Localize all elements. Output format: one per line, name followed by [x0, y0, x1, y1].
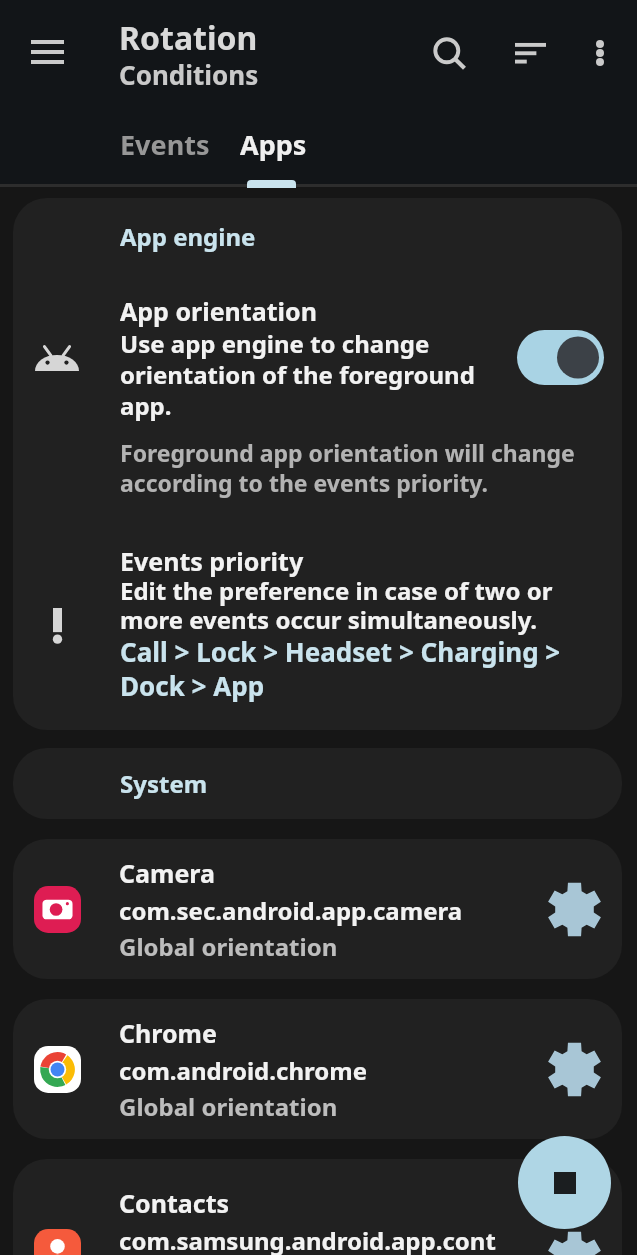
staticText: Rotation [119, 16, 258, 60]
staticText: com.android.chrome [119, 1051, 367, 1088]
button[interactable]: Contacts [13, 1159, 622, 1255]
button[interactable]: Sort [497, 20, 563, 86]
button[interactable]: Events priority [13, 548, 622, 703]
staticText: Call > Lock > Headset > Charging > Dock … [120, 635, 600, 703]
staticText: Contacts [119, 1184, 230, 1221]
button[interactable]: App settings [544, 1228, 604, 1255]
button[interactable]: System [13, 748, 622, 819]
staticText: com.sec.android.app.camera [119, 891, 463, 928]
button[interactable]: App orientation [13, 293, 622, 422]
staticText: Edit the preference in case of two or mo… [120, 577, 600, 635]
button[interactable]: Search [417, 21, 483, 87]
button[interactable]: Chrome [13, 999, 622, 1139]
button[interactable]: Navigation menu [14, 19, 80, 85]
staticText: App engine [120, 220, 256, 253]
button[interactable]: Stop [518, 1136, 611, 1229]
button[interactable]: App settings [544, 879, 604, 939]
staticText: Chrome [119, 1014, 217, 1051]
staticText: Use app engine to change orientation of … [120, 329, 517, 422]
button[interactable]: Camera [13, 839, 622, 979]
staticText: Events priority [120, 548, 304, 577]
button[interactable]: App orientation toggle [517, 330, 604, 385]
staticText: Global orientation [119, 1088, 338, 1124]
button[interactable]: More options [567, 20, 633, 86]
button[interactable]: Events [100, 118, 230, 171]
staticText: Global orientation [119, 928, 338, 964]
staticText: Apps [240, 126, 307, 163]
button[interactable]: App settings [544, 1039, 604, 1099]
staticText: Conditions [119, 57, 259, 92]
button[interactable]: Apps [220, 118, 327, 171]
staticText: App orientation [120, 293, 317, 329]
staticText: com.samsung.android.app.contacts [119, 1221, 506, 1255]
staticText: System [120, 767, 208, 800]
staticText: Foreground app orientation will change a… [120, 438, 600, 498]
staticText: Events [120, 126, 210, 163]
staticText: Camera [119, 854, 215, 891]
